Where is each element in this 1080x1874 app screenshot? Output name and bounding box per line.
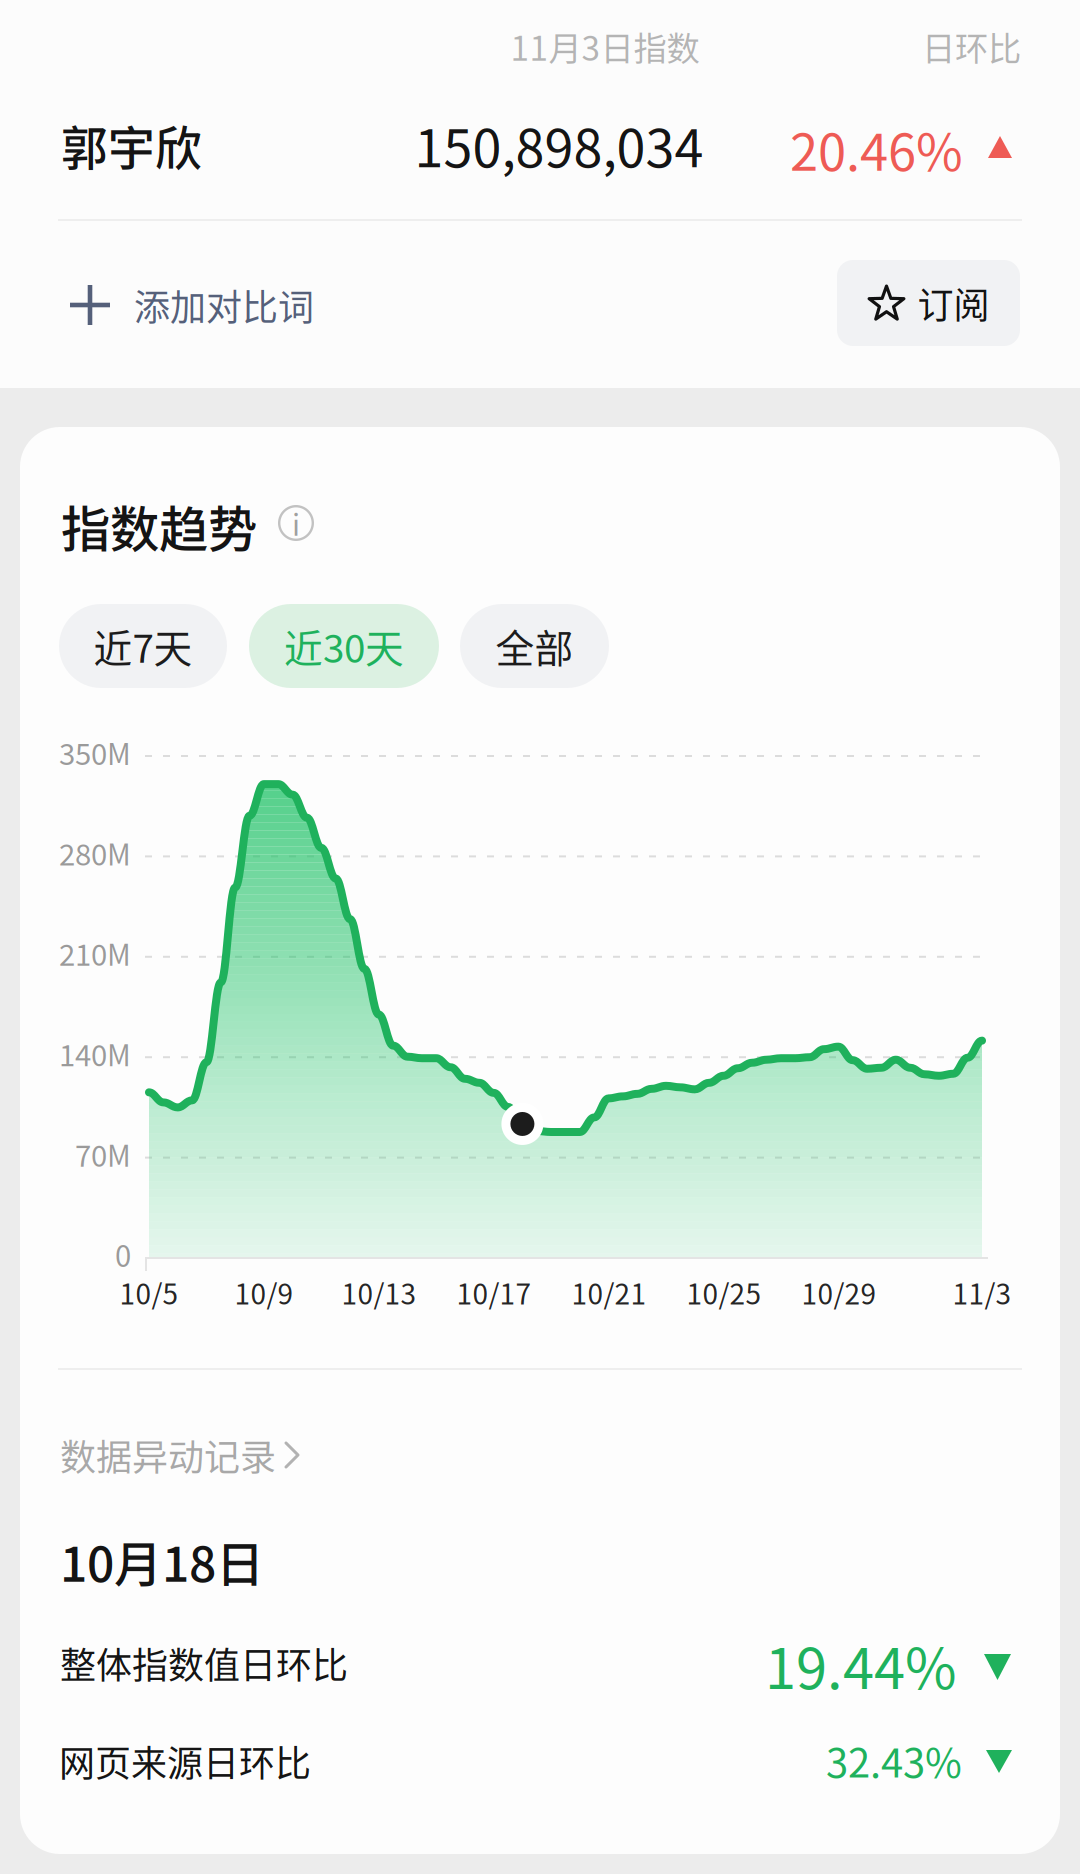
staticText: 郭宇欣	[61, 111, 202, 179]
staticText: 32.43%	[826, 1731, 962, 1789]
staticText: 70M	[75, 1133, 131, 1175]
staticText: 10/17	[456, 1272, 531, 1312]
button[interactable]: 订阅	[837, 260, 1020, 346]
button[interactable]: 近7天	[59, 604, 227, 688]
staticText: 订阅	[917, 277, 989, 329]
staticText: 10/13	[341, 1272, 416, 1312]
staticText: 280M	[59, 831, 131, 874]
staticText: 日环比	[922, 22, 1021, 70]
staticText: 10/5	[119, 1272, 178, 1312]
staticText: 11/3	[952, 1272, 1011, 1312]
staticText: 140M	[59, 1032, 131, 1075]
button[interactable]: 指数趋势说明	[274, 501, 318, 545]
staticText: 0	[115, 1233, 131, 1275]
staticText: 10/29	[801, 1272, 876, 1312]
staticText: 全部	[495, 618, 573, 674]
staticText: 20.46%	[790, 112, 963, 185]
staticText: 添加对比词	[134, 279, 314, 331]
staticText: 210M	[59, 932, 131, 974]
button[interactable]: 全部	[460, 604, 609, 688]
staticText: 10月18日	[60, 1526, 264, 1595]
staticText: 19.44%	[765, 1624, 957, 1705]
button[interactable]: 近30天	[249, 604, 439, 688]
staticText: 整体指数值日环比	[60, 1637, 348, 1689]
staticText: 近7天	[93, 618, 192, 674]
button[interactable]: 添加对比词	[0, 259, 344, 351]
button[interactable]: 数据异动记录	[0, 1425, 322, 1485]
staticText: 数据异动记录	[60, 1429, 276, 1481]
staticText: 10/21	[571, 1272, 646, 1312]
staticText: 网页来源日环比	[59, 1735, 311, 1787]
staticText: 150,898,034	[414, 107, 703, 182]
staticText: 10/25	[686, 1272, 761, 1312]
staticText: 350M	[59, 731, 131, 773]
staticText: 近30天	[284, 618, 404, 674]
staticText: 指数趋势	[61, 490, 257, 561]
staticText: 11月3日指数	[510, 22, 699, 70]
staticText: 10/9	[234, 1272, 293, 1312]
staticText: i	[292, 502, 300, 544]
